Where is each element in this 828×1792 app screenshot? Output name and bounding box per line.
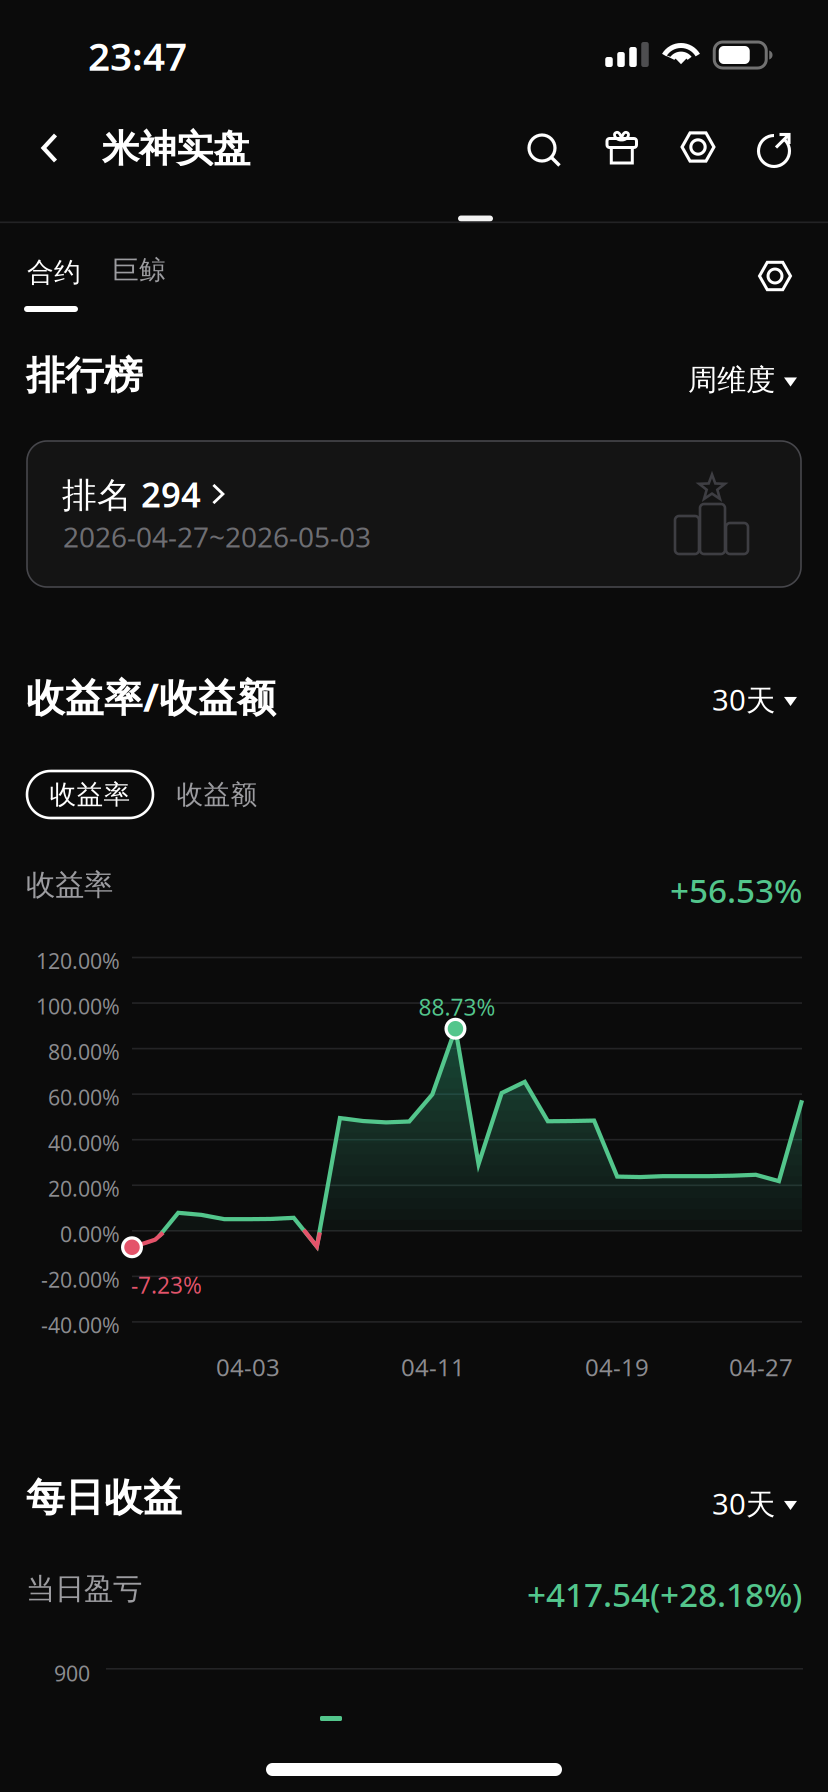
button[interactable]: 收益额 bbox=[171, 771, 263, 818]
staticText: -20.00% bbox=[41, 1265, 120, 1294]
staticText: 30天 bbox=[712, 680, 775, 719]
staticText: 40.00% bbox=[48, 1129, 120, 1157]
staticText: 排名 294 bbox=[62, 471, 201, 517]
staticText: 当日盈亏 bbox=[26, 1571, 142, 1607]
staticText: 巨鲸 bbox=[112, 254, 166, 286]
staticText: +417.54(+28.18%) bbox=[527, 1572, 802, 1616]
button[interactable]: 收益率 bbox=[27, 771, 153, 818]
button[interactable]: Share bbox=[743, 117, 805, 183]
staticText: 04-11 bbox=[401, 1351, 465, 1383]
staticText: 收益率/收益额 bbox=[26, 671, 276, 722]
staticText: +56.53% bbox=[670, 868, 802, 912]
staticText: 88.73% bbox=[418, 992, 495, 1022]
staticText: 收益率 bbox=[26, 867, 113, 903]
staticText: 米神实盘 bbox=[102, 126, 250, 172]
button[interactable]: 巨鲸 bbox=[103, 246, 175, 298]
staticText: 80.00% bbox=[48, 1038, 120, 1066]
staticText: 排行榜 bbox=[26, 352, 143, 399]
button[interactable]: 排名 294 bbox=[27, 441, 801, 587]
staticText: 每日收益 bbox=[26, 1474, 182, 1521]
staticText: 收益额 bbox=[176, 778, 257, 811]
staticText: -7.23% bbox=[131, 1270, 202, 1300]
staticText: 04-27 bbox=[729, 1351, 793, 1383]
staticText: 100.00% bbox=[36, 992, 120, 1020]
staticText: 合约 bbox=[27, 256, 81, 289]
button[interactable]: 30天 bbox=[706, 1476, 803, 1531]
staticText: 120.00% bbox=[36, 946, 120, 975]
staticText: 23:47 bbox=[88, 30, 187, 81]
button[interactable]: Strategy bbox=[667, 114, 729, 180]
staticText: -40.00% bbox=[41, 1311, 120, 1339]
button[interactable]: 合约 bbox=[12, 246, 98, 324]
button[interactable]: 周维度 bbox=[682, 354, 803, 406]
button[interactable]: 30天 bbox=[706, 672, 803, 727]
staticText: 04-19 bbox=[585, 1351, 649, 1383]
staticText: 30天 bbox=[712, 1484, 775, 1523]
button[interactable]: Search bbox=[514, 118, 576, 184]
staticText: 04-03 bbox=[216, 1351, 280, 1383]
button[interactable]: Rewards bbox=[591, 112, 653, 184]
button[interactable]: Back bbox=[14, 113, 86, 183]
staticText: 20.00% bbox=[48, 1174, 120, 1202]
staticText: 2026-04-27~2026-05-03 bbox=[63, 518, 371, 555]
button[interactable]: Filter bbox=[745, 248, 805, 304]
staticText: 60.00% bbox=[48, 1083, 120, 1111]
staticText: 0.00% bbox=[60, 1220, 120, 1248]
staticText: 收益率 bbox=[49, 778, 130, 811]
staticText: 900 bbox=[54, 1659, 90, 1687]
staticText: 周维度 bbox=[688, 362, 775, 398]
